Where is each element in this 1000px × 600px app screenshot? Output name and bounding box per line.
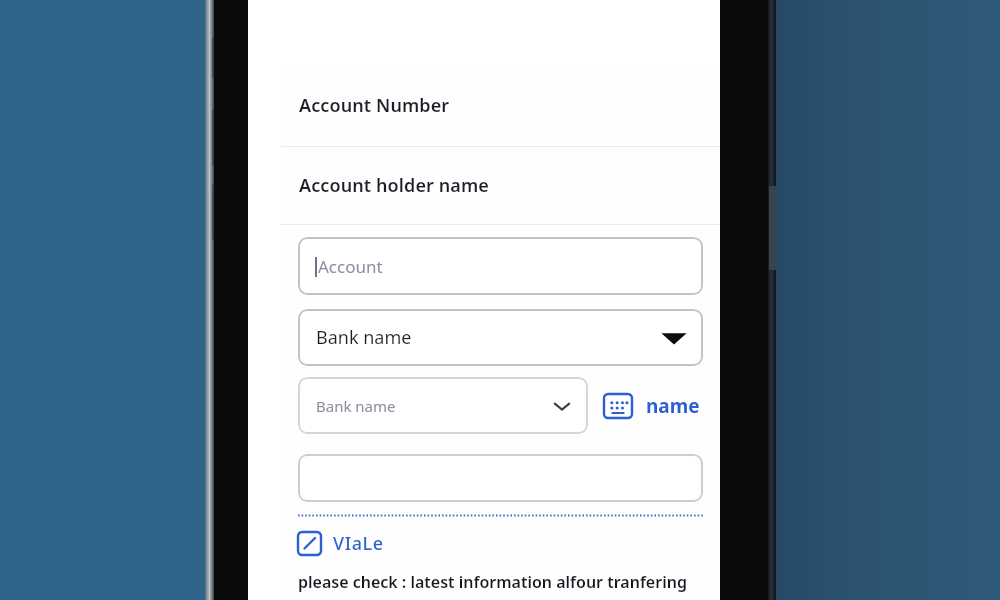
staticText: Account holder name bbox=[299, 173, 489, 198]
staticText: VIaLe bbox=[333, 531, 384, 556]
button[interactable]: Bank name bbox=[298, 309, 703, 366]
staticText: please check : latest information alfour… bbox=[298, 571, 687, 593]
staticText: Bank name bbox=[316, 325, 412, 350]
button[interactable]: Account bbox=[298, 237, 703, 295]
button[interactable]: Keyboard bbox=[604, 394, 632, 418]
button[interactable]: VIaLe bbox=[298, 531, 384, 556]
staticText: Account Number bbox=[299, 93, 450, 118]
staticText: Bank name bbox=[316, 396, 396, 416]
staticText: Account bbox=[318, 255, 383, 278]
button[interactable]: Account holder name bbox=[281, 147, 720, 224]
button[interactable] bbox=[298, 454, 703, 502]
button[interactable]: Account Number bbox=[281, 65, 720, 146]
button[interactable]: Bank name bbox=[298, 377, 588, 434]
button[interactable]: name bbox=[646, 393, 700, 419]
